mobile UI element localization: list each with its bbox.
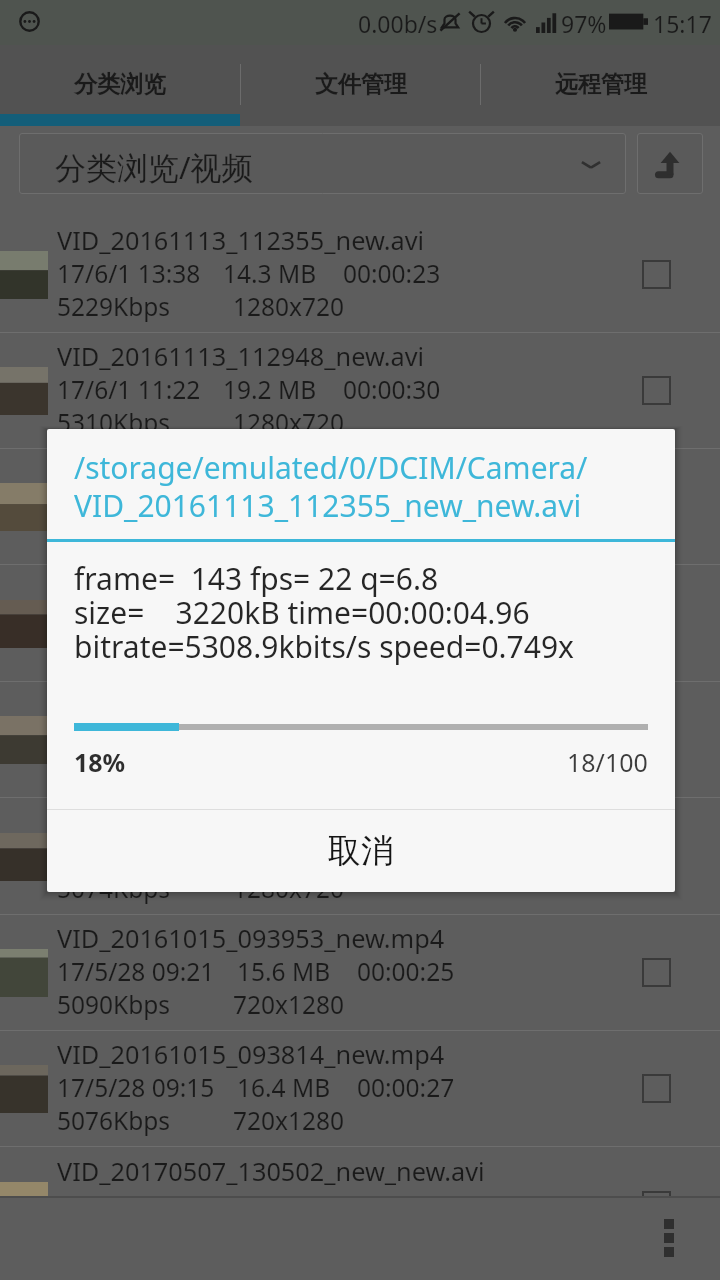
staticText: 5076Kbps bbox=[57, 1104, 171, 1137]
button[interactable]: 分类浏览 bbox=[0, 45, 240, 114]
staticText: 5090Kbps bbox=[57, 988, 171, 1021]
button[interactable]: More options bbox=[639, 1202, 699, 1274]
button[interactable]: Select file bbox=[612, 566, 720, 681]
staticText: 1280x720 bbox=[233, 872, 345, 905]
staticText: VID_20170507_130502_new_new.avi bbox=[57, 1154, 485, 1188]
staticText: 15.6 MB bbox=[237, 955, 331, 988]
staticText: 0.00b/s bbox=[358, 8, 438, 39]
staticText: VID_20161113_113042_new.avi bbox=[57, 455, 425, 489]
staticText: 1280x720 bbox=[233, 290, 345, 323]
staticText: 00:00:27 bbox=[357, 1071, 455, 1104]
button[interactable]: Select file bbox=[612, 682, 720, 797]
button[interactable]: 远程管理 bbox=[481, 45, 720, 114]
staticText: VID_20161113_114455_new.avi bbox=[57, 805, 425, 839]
button[interactable]: Go up one level bbox=[637, 133, 703, 194]
button[interactable]: VID_20170507_130502_new_new.avi bbox=[0, 1148, 720, 1263]
staticText: 720x1280 bbox=[233, 1104, 345, 1137]
staticText: 5229Kbps bbox=[57, 290, 171, 323]
staticText: VID_20161015_093953_new.mp4 bbox=[57, 921, 445, 955]
staticText: 17/6/1 11:15 bbox=[57, 722, 201, 755]
button[interactable]: Select file bbox=[612, 1031, 720, 1146]
button[interactable]: Select file bbox=[612, 217, 720, 332]
button[interactable]: 分类浏览/视频 bbox=[19, 133, 626, 194]
staticText: VID_20161015_093814_new.mp4 bbox=[57, 1037, 445, 1071]
button[interactable]: Select file bbox=[612, 799, 720, 914]
staticText: 00:00:24 bbox=[343, 839, 441, 872]
staticText: 19.2 MB bbox=[223, 373, 317, 406]
button[interactable]: 取消 bbox=[47, 810, 675, 892]
button[interactable]: 文件管理 bbox=[241, 45, 480, 114]
staticText: VID_20161113_112355_new.avi bbox=[57, 223, 425, 257]
staticText: 17/5/28 09:15 bbox=[57, 1071, 215, 1104]
staticText: VID_20161113_112948_new.avi bbox=[57, 339, 425, 373]
staticText: 00:00:33 bbox=[343, 1188, 441, 1221]
staticText: 5310Kbps bbox=[57, 406, 171, 439]
staticText: 17.8 MB bbox=[223, 722, 317, 755]
staticText: 15:17 bbox=[653, 8, 712, 39]
button[interactable]: VID_20161113_113519_new.avi bbox=[0, 566, 720, 681]
staticText: /storage/emulated/0/DCIM/Camera/ VID_201… bbox=[74, 447, 588, 526]
staticText: 00:00:21 bbox=[343, 606, 441, 639]
staticText: 文件管理 bbox=[315, 70, 407, 99]
staticText: 分类浏览 bbox=[74, 70, 166, 99]
staticText: 00:00:28 bbox=[343, 489, 441, 522]
button[interactable]: VID_20161113_113042_new.avi bbox=[0, 449, 720, 564]
staticText: 5271Kbps bbox=[57, 522, 171, 555]
staticText: 分类浏览/视频 bbox=[55, 146, 253, 188]
button[interactable]: VID_20161113_112948_new.avi bbox=[0, 333, 720, 448]
button[interactable]: VID_20161015_093953_new.mp4 bbox=[0, 915, 720, 1030]
staticText: 22.1 MB bbox=[223, 1188, 317, 1221]
staticText: 12.5 MB bbox=[223, 606, 317, 639]
staticText: 18% bbox=[74, 745, 126, 779]
button[interactable]: Select file bbox=[612, 915, 720, 1030]
staticText: 17/6/1 13:38 bbox=[57, 257, 201, 290]
staticText: 1280x720 bbox=[233, 639, 345, 672]
staticText: 5074Kbps bbox=[57, 872, 171, 905]
button[interactable]: VID_20161015_093814_new.mp4 bbox=[0, 1031, 720, 1146]
staticText: 16.4 MB bbox=[237, 1071, 331, 1104]
button[interactable]: Select file bbox=[612, 449, 720, 564]
staticText: 00:00:23 bbox=[343, 257, 441, 290]
staticText: 17/6/1 11:20 bbox=[57, 489, 201, 522]
staticText: 14.3 MB bbox=[223, 257, 317, 290]
staticText: 00:00:26 bbox=[343, 722, 441, 755]
staticText: 720x1280 bbox=[233, 988, 345, 1021]
button[interactable]: VID_20161113_114455_new.avi bbox=[0, 799, 720, 914]
staticText: 5180Kbps bbox=[57, 755, 171, 788]
staticText: 17/5/7 13:05 bbox=[57, 1188, 201, 1221]
staticText: 17/6/1 11:22 bbox=[57, 373, 201, 406]
button[interactable]: Select file bbox=[612, 333, 720, 448]
staticText: 5110Kbps bbox=[57, 639, 171, 672]
staticText: 取消 bbox=[328, 830, 394, 872]
staticText: 00:00:25 bbox=[357, 955, 455, 988]
button[interactable]: Notifications bbox=[11, 3, 47, 39]
staticText: 远程管理 bbox=[555, 70, 647, 99]
staticText: VID_20161113_113519_new.avi bbox=[57, 572, 425, 606]
button[interactable]: VID_20161113_112355_new.avi bbox=[0, 217, 720, 332]
staticText: 17/5/28 09:21 bbox=[57, 955, 215, 988]
staticText: 97% bbox=[561, 8, 607, 39]
staticText: 18.1 MB bbox=[223, 489, 317, 522]
staticText: 1280x720 bbox=[233, 406, 345, 439]
button[interactable]: VID_20161113_114011_new.avi bbox=[0, 682, 720, 797]
staticText: 00:00:30 bbox=[343, 373, 441, 406]
button[interactable]: Select file bbox=[612, 1148, 720, 1263]
staticText: 17/6/1 11:18 bbox=[57, 606, 201, 639]
staticText: 1280x720 bbox=[233, 522, 345, 555]
staticText: 18/100 bbox=[567, 745, 648, 779]
staticText: frame= 143 fps= 22 q=6.8 size= 3220kB ti… bbox=[74, 558, 574, 666]
